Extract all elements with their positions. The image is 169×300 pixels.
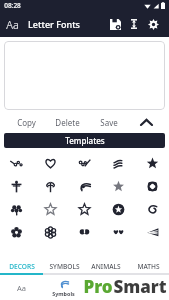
button[interactable]: Symbol 9 [135, 175, 169, 198]
staticText: ANIMALS [91, 262, 121, 271]
staticText: MATHS [137, 262, 160, 271]
staticText: Letter Fonts [28, 18, 80, 30]
staticText: Aa [6, 17, 19, 32]
staticText: Pro [83, 275, 113, 298]
staticText: Save [100, 117, 118, 128]
button[interactable]: Templates [4, 133, 165, 148]
button[interactable]: Symbol 18 [101, 221, 135, 244]
button[interactable]: Symbol 2 [67, 152, 101, 175]
button[interactable]: ANIMALS [85, 259, 127, 273]
button[interactable]: Text input [4, 41, 165, 110]
button[interactable]: Text size [125, 15, 143, 33]
staticText: Copy [17, 117, 36, 128]
button[interactable]: Symbol 12 [67, 198, 101, 221]
button[interactable]: Symbol 4 [135, 152, 169, 175]
button[interactable]: Symbol 0 [0, 152, 33, 175]
button[interactable]: Copy [6, 113, 47, 131]
staticText: 08:28 [4, 1, 21, 10]
button[interactable]: MATHS [127, 259, 169, 273]
button[interactable]: Symbol 14 [135, 198, 169, 221]
button[interactable]: Symbol 10 [0, 198, 33, 221]
button[interactable]: Symbol 19 [135, 221, 169, 244]
button[interactable]: Aa [0, 275, 42, 300]
button[interactable]: Save [88, 113, 129, 131]
button[interactable]: Symbol 13 [101, 198, 135, 221]
staticText: SYMBOLS [49, 262, 80, 271]
button[interactable]: Symbol 7 [67, 175, 101, 198]
staticText: Symbols [52, 290, 75, 297]
staticText: Smart [113, 275, 167, 298]
button[interactable]: Collapse [129, 113, 163, 131]
staticText: Aa [17, 283, 26, 293]
button[interactable]: Delete [47, 113, 88, 131]
button[interactable]: Settings [143, 14, 163, 34]
staticText: DECORS [9, 262, 35, 271]
button[interactable]: Symbol 5 [0, 175, 33, 198]
button[interactable]: Save text [105, 14, 125, 34]
button[interactable]: Symbol 11 [33, 198, 67, 221]
button[interactable]: Symbols [42, 275, 84, 300]
button[interactable]: Symbol 1 [33, 152, 67, 175]
button[interactable]: SYMBOLS [43, 259, 85, 273]
button[interactable]: DECORS [0, 259, 43, 273]
staticText: Templates [65, 135, 105, 146]
button[interactable]: Symbol 8 [101, 175, 135, 198]
staticText: Delete [55, 117, 80, 128]
button[interactable]: Symbol 16 [33, 221, 67, 244]
button[interactable]: Symbol 15 [0, 221, 33, 244]
button[interactable]: Symbol 3 [101, 152, 135, 175]
button[interactable]: Symbol 17 [67, 221, 101, 244]
button[interactable]: Symbol 6 [33, 175, 67, 198]
